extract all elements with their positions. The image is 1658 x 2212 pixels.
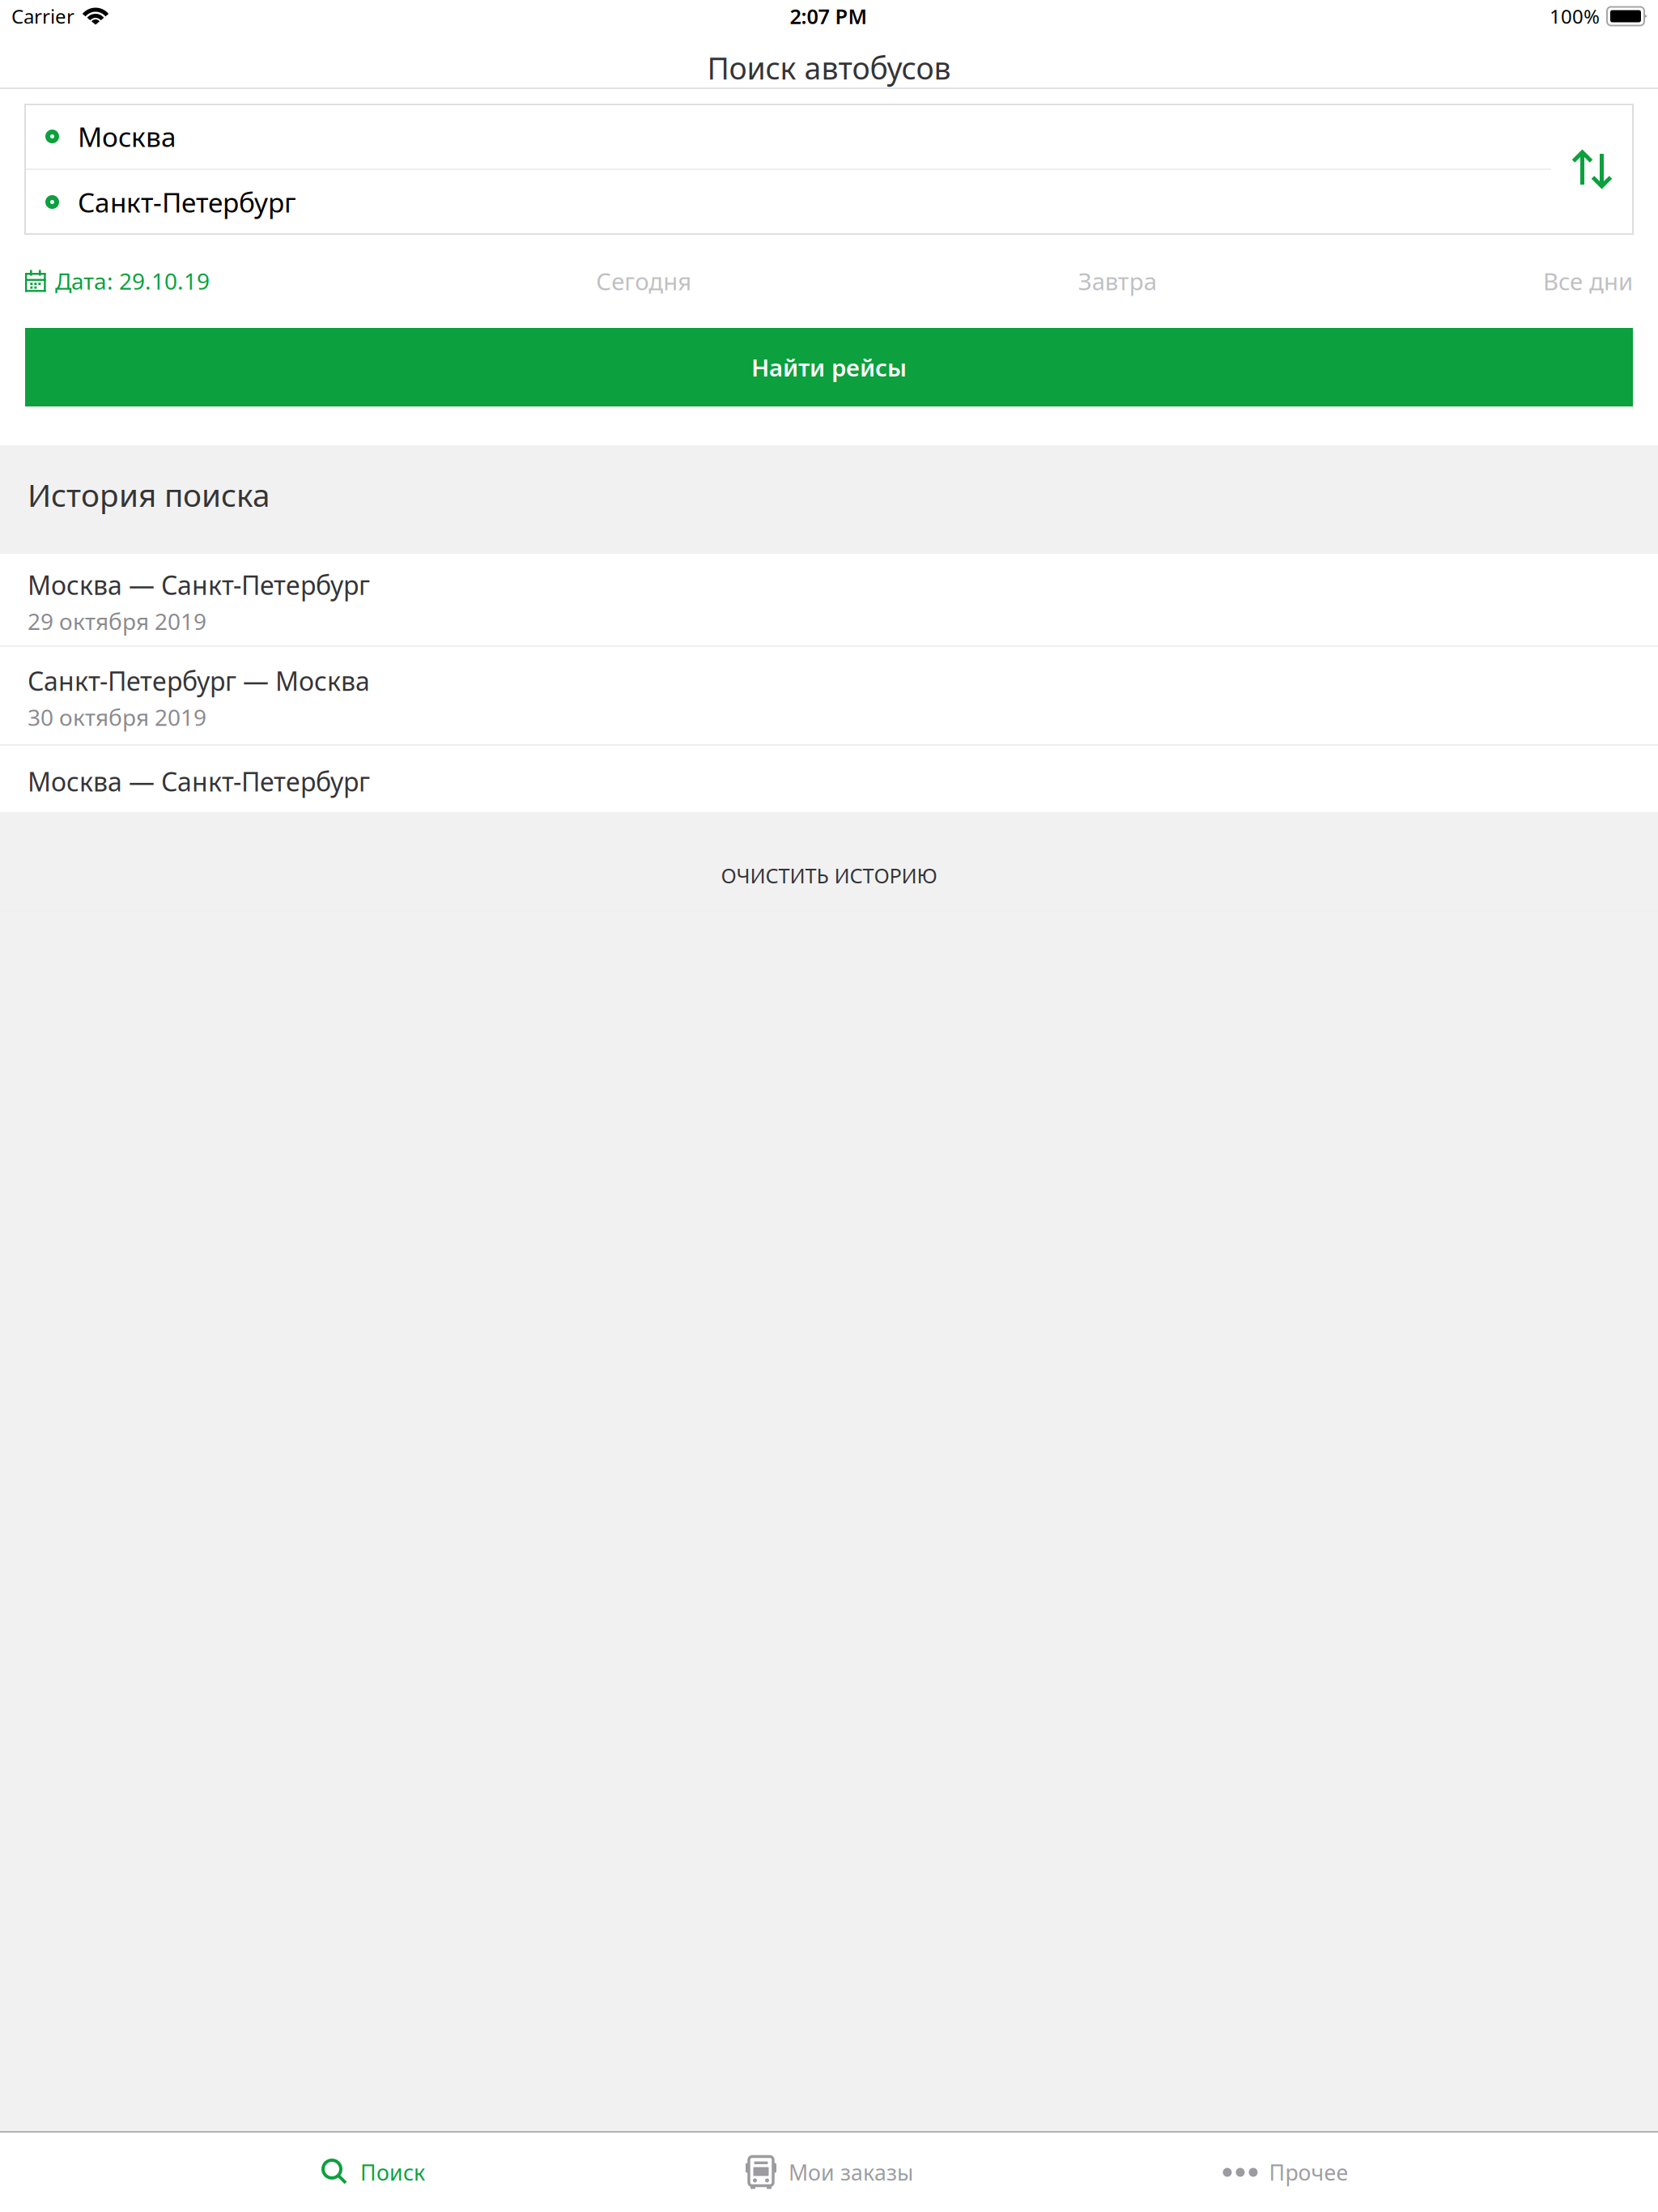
staticText: Москва (78, 119, 176, 154)
staticText: Москва — Санкт-Петербург (28, 764, 370, 799)
button[interactable]: Москва — Санкт-Петербург (0, 554, 1658, 645)
staticText: История поиска (28, 474, 270, 515)
button[interactable]: Санкт-Петербург (25, 170, 1551, 234)
button[interactable]: Поиск (144, 2133, 601, 2212)
button[interactable]: Москва — Санкт-Петербург (0, 746, 1658, 812)
button[interactable]: Завтра (1078, 259, 1157, 303)
staticText: Поиск (360, 2158, 425, 2187)
staticText: Найти рейсы (751, 351, 907, 383)
button[interactable]: Найти рейсы (25, 328, 1633, 406)
button[interactable]: Мои заказы (601, 2133, 1057, 2212)
staticText: Москва — Санкт-Петербург (28, 568, 370, 602)
staticText: 2:07 PM (790, 3, 867, 30)
staticText: ОЧИСТИТЬ ИСТОРИЮ (721, 862, 937, 889)
staticText: Все дни (1543, 265, 1633, 297)
button[interactable]: Дата: 29.10.19 (25, 259, 210, 303)
button[interactable]: ОЧИСТИТЬ ИСТОРИЮ (0, 812, 1658, 910)
staticText: Санкт-Петербург (78, 184, 296, 220)
staticText: Завтра (1078, 265, 1157, 297)
staticText: Прочее (1269, 2158, 1348, 2187)
staticText: 100% (1550, 3, 1600, 29)
button[interactable]: Все дни (1543, 259, 1633, 303)
button[interactable]: Поменять направление (1551, 104, 1633, 234)
staticText: Поиск автобусов (707, 48, 951, 88)
staticText: Сегодня (596, 265, 692, 297)
staticText: Мои заказы (789, 2158, 913, 2187)
staticText: 29 октября 2019 (28, 606, 206, 636)
button[interactable]: Санкт-Петербург — Москва (0, 647, 1658, 744)
staticText: 30 октября 2019 (28, 702, 206, 732)
staticText: Санкт-Петербург — Москва (28, 664, 370, 698)
button[interactable]: Прочее (1057, 2133, 1514, 2212)
staticText: Дата: 29.10.19 (55, 266, 210, 296)
staticText: Carrier (11, 3, 74, 29)
button[interactable]: Сегодня (596, 259, 692, 303)
button[interactable]: Москва (25, 104, 1551, 168)
